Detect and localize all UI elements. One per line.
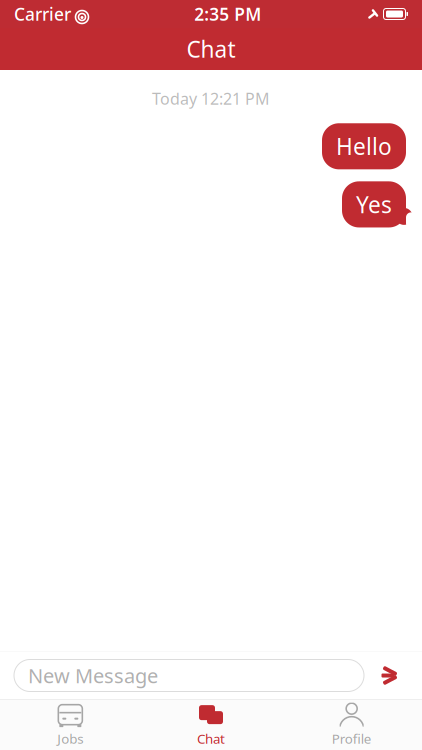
- button[interactable]: New Message: [14, 659, 364, 691]
- button[interactable]: Jobs: [0, 700, 141, 750]
- staticText: Profile: [332, 730, 372, 747]
- button[interactable]: Chat: [141, 700, 281, 750]
- staticText: Chat: [186, 34, 235, 64]
- staticText: Yes: [356, 189, 392, 219]
- staticText: Today 12:21 PM: [152, 88, 270, 109]
- staticText: Chat: [197, 730, 225, 747]
- button[interactable]: Profile: [281, 700, 422, 750]
- staticText: New Message: [28, 662, 158, 689]
- button[interactable]: Send: [374, 658, 408, 692]
- staticText: Hello: [336, 131, 392, 161]
- staticText: Carrier: [14, 2, 71, 25]
- staticText: 2:35 PM: [194, 2, 261, 25]
- staticText: Jobs: [57, 730, 83, 747]
